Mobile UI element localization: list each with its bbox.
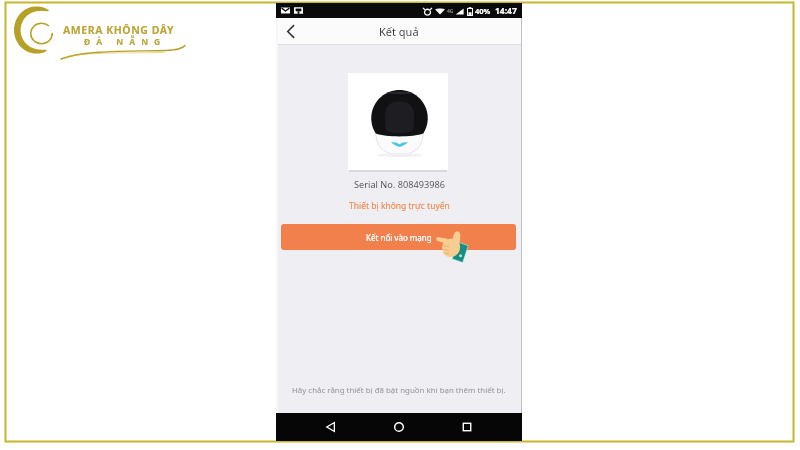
- staticText: Kết quả: [379, 24, 419, 39]
- staticText: AMERA KHÔNG DÂY: [63, 23, 175, 37]
- button[interactable]: Kết nối vào mạng: [281, 224, 516, 250]
- staticText: 14:47: [495, 5, 517, 17]
- button[interactable]: Back: [276, 18, 304, 45]
- staticText: Thiết bị không trực tuyến: [349, 200, 450, 212]
- staticText: 40%: [475, 6, 491, 16]
- staticText: Hãy chắc rằng thiết bị đã bật nguồn khi …: [292, 385, 506, 396]
- button[interactable]: Home: [386, 414, 412, 440]
- staticText: Đ À N Ẵ N G: [84, 36, 163, 48]
- button[interactable]: Back: [318, 414, 344, 440]
- staticText: 4G: [447, 8, 454, 15]
- staticText: Kết nối vào mạng: [366, 232, 432, 243]
- staticText: Serial No. 808493986: [354, 178, 445, 191]
- button[interactable]: Recents: [454, 414, 480, 440]
